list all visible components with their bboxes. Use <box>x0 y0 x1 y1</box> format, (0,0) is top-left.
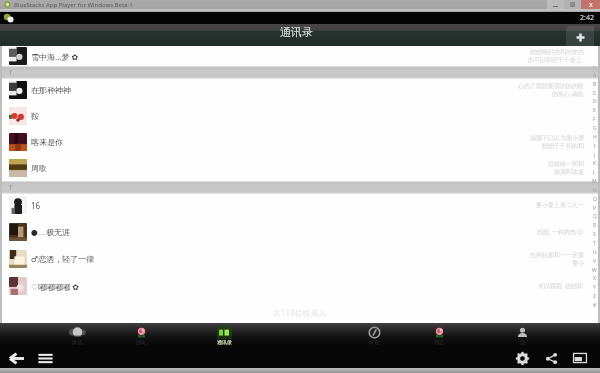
staticText: 极滴和浓度 <box>554 168 584 176</box>
staticText: 拉种起那和一一定要 <box>530 251 584 259</box>
staticText: 16 <box>31 200 41 211</box>
staticText: 拉碳碳一和和 <box>548 160 584 168</box>
staticText: 的有心.减机 <box>552 90 584 98</box>
button[interactable]: 在那种神神 <box>0 79 600 105</box>
staticText: R <box>593 222 597 229</box>
staticText: 发现 <box>369 339 379 345</box>
staticText: V <box>593 258 597 265</box>
staticText: K <box>593 160 597 167</box>
button[interactable]: 我 <box>501 323 543 347</box>
staticText: A <box>593 72 597 79</box>
button[interactable]: ●﹏极无涯 <box>0 221 600 248</box>
button[interactable]: Close <box>581 0 600 9</box>
staticText: P <box>593 205 597 212</box>
staticText: 心的了我想要我的的的歌 <box>518 82 584 90</box>
staticText: ↑ <box>8 184 14 192</box>
staticText: 鞍 <box>31 111 39 121</box>
staticText: ↑ <box>8 69 14 77</box>
staticText: 福源下口以方面小里 <box>530 134 584 142</box>
staticText: 雪中海...梦 ✿ <box>31 51 79 62</box>
staticText: 的可以和好于个看上. <box>528 56 584 64</box>
staticText: 通讯录 <box>280 25 313 39</box>
button[interactable]: Window <box>570 348 590 368</box>
button[interactable]: 发现 <box>353 323 395 347</box>
staticText: Q <box>593 213 597 220</box>
button[interactable]: 添加朋友 <box>566 26 594 46</box>
staticText: D <box>593 98 597 105</box>
staticText: T <box>593 240 596 247</box>
button[interactable]: 通讯录 <box>203 323 245 347</box>
staticText: 想想于于和的和 <box>542 142 584 150</box>
staticText: X <box>593 275 596 282</box>
button[interactable]: Minimize <box>547 0 564 9</box>
staticText: ☆ <box>592 64 597 70</box>
staticText: O <box>593 196 597 203</box>
staticText: 想想喝好的和的梦的 <box>530 48 584 56</box>
staticText: 微信 <box>72 339 82 345</box>
staticText: 共118位联系人 <box>273 307 327 318</box>
button[interactable]: Menu <box>34 350 56 366</box>
staticText: BlueStacks App Player for Windows Beta-1 <box>14 1 133 9</box>
staticText: 动态 <box>434 339 444 345</box>
button[interactable]: 雪中海...梦 ✿ <box>0 46 600 66</box>
staticText: S <box>593 231 596 238</box>
staticText: ●﹏极无涯 <box>31 227 70 237</box>
staticText: ♂恋洒，轻了一律 <box>31 254 95 264</box>
staticText: 喀来是你 <box>31 137 63 147</box>
staticText: Z <box>593 293 596 300</box>
staticText: 2:42 <box>580 13 594 23</box>
button[interactable]: ♂恋洒，轻了一律 <box>0 248 600 275</box>
staticText: 想想_一种的伤 ☺ <box>537 228 584 236</box>
staticText: 要小要上第二人一 <box>536 201 584 209</box>
button[interactable]: Settings <box>512 348 532 368</box>
staticText: B <box>593 81 597 88</box>
staticText: M <box>592 178 597 185</box>
button[interactable]: 微信 <box>56 323 98 347</box>
button[interactable]: 16 <box>0 194 600 221</box>
staticText: 朋友 <box>136 339 146 345</box>
staticText: 整小 <box>572 259 584 267</box>
staticText: H <box>593 134 597 141</box>
staticText: # <box>593 302 597 309</box>
staticText: E <box>593 107 596 114</box>
staticText: W <box>592 267 597 274</box>
button[interactable]: Share <box>541 348 561 368</box>
button[interactable]: 朋友 <box>120 323 162 347</box>
staticText: 周歌 <box>31 163 47 173</box>
staticText: 何以我我 想想和 <box>538 282 584 290</box>
button[interactable]: Back <box>7 350 25 366</box>
button[interactable]: Maximize <box>564 0 581 9</box>
staticText: J <box>594 152 596 159</box>
button[interactable]: 鞍 <box>0 105 600 131</box>
staticText: x <box>589 0 593 9</box>
staticText: G <box>593 125 597 132</box>
staticText: ♡嘟嘟嘟嘟 ✿ <box>31 281 79 292</box>
staticText: N <box>593 187 597 194</box>
button[interactable]: 周歌 <box>0 157 600 181</box>
staticText: 在那种神神 <box>31 85 71 95</box>
staticText: U <box>593 249 597 256</box>
staticText: I <box>594 143 596 150</box>
staticText: 我 <box>520 339 525 345</box>
staticText: F <box>593 116 596 123</box>
staticText: 通讯录 <box>217 339 232 345</box>
staticText: Y <box>593 284 596 291</box>
staticText: L <box>593 169 596 176</box>
staticText: C <box>593 90 597 97</box>
button[interactable]: 喀来是你 <box>0 131 600 157</box>
button[interactable]: ♡嘟嘟嘟嘟 ✿ <box>0 275 600 302</box>
button[interactable]: 动态 <box>418 323 460 347</box>
